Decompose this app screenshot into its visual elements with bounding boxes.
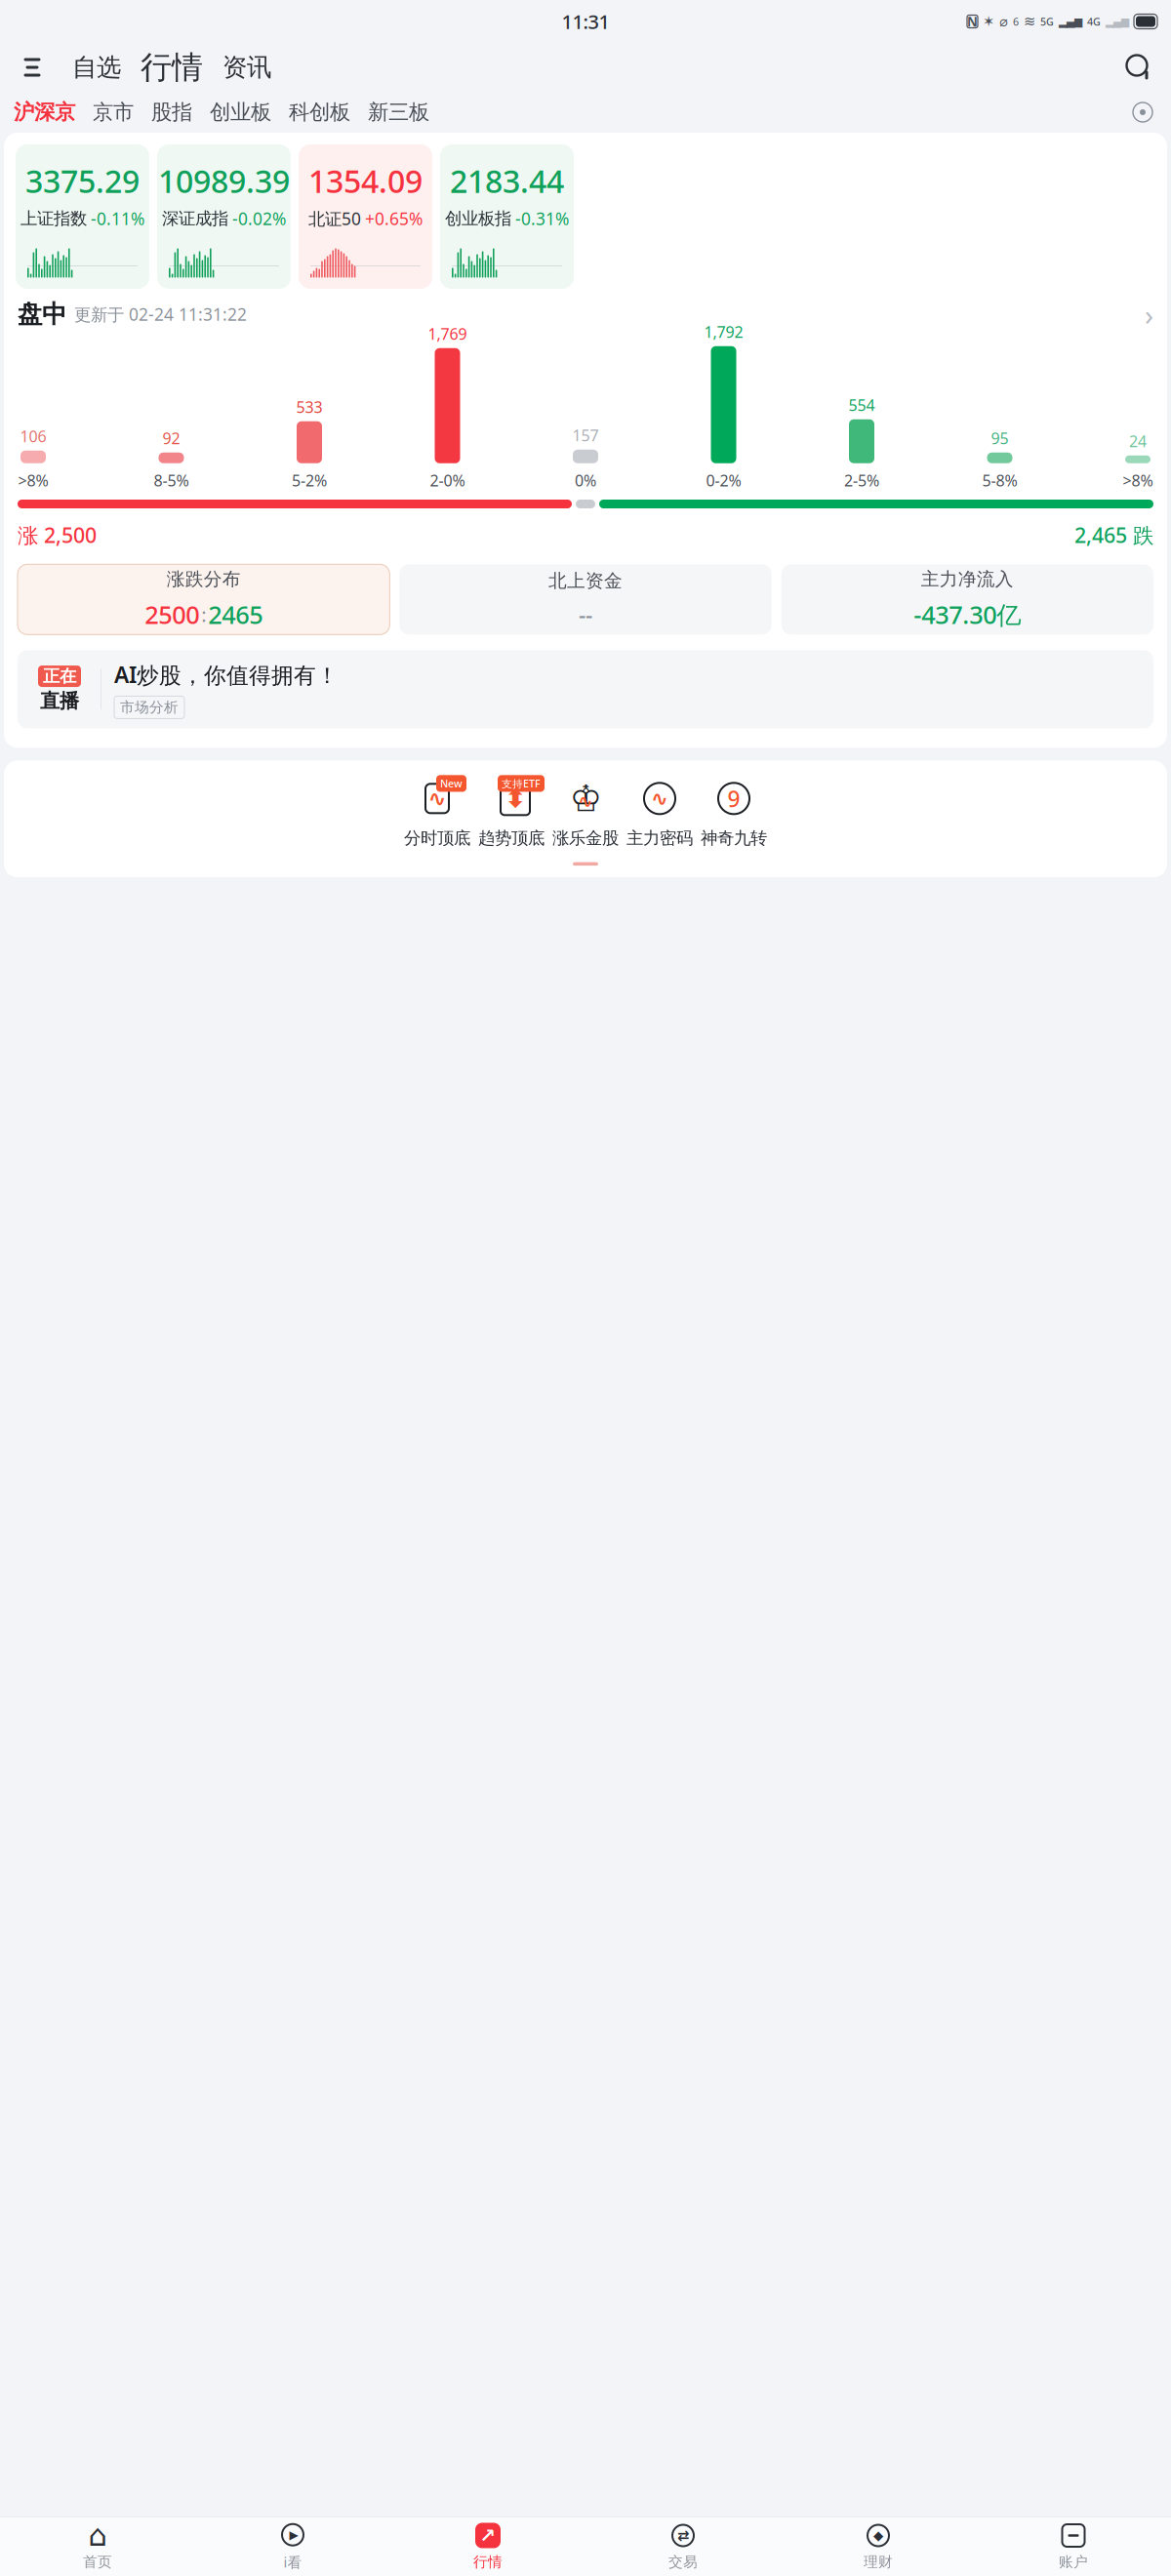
button[interactable]: 北上资金 xyxy=(399,564,771,635)
button[interactable]: 正在 xyxy=(18,650,1153,728)
staticText: 京市 xyxy=(93,99,134,125)
staticText: 1,769 xyxy=(428,323,467,344)
staticText: 24 xyxy=(1129,431,1147,451)
button[interactable]: ▶ xyxy=(195,2521,390,2572)
button[interactable]: 主力净流入 xyxy=(781,564,1153,635)
staticText: i看 xyxy=(283,2552,302,2571)
staticText: 2-5% xyxy=(844,470,879,491)
staticText: ⌂ xyxy=(88,2519,107,2552)
staticText: 10989.39 xyxy=(158,160,290,201)
button[interactable]: ⬍ xyxy=(474,778,548,849)
button[interactable]: 新三板 xyxy=(368,99,429,125)
staticText: 首页 xyxy=(83,2553,112,2571)
button[interactable]: 科创板 xyxy=(289,99,350,125)
staticText: 支持ETF xyxy=(502,777,541,790)
staticText: 正在 xyxy=(43,666,76,687)
staticText: -0.02% xyxy=(232,207,286,230)
button[interactable]: ⇄ xyxy=(585,2521,781,2572)
button[interactable]: ∿ xyxy=(623,778,697,849)
staticText: 市场分析 xyxy=(120,699,179,716)
button[interactable]: 京市 xyxy=(93,99,134,125)
staticText: ↗ xyxy=(480,2524,496,2547)
staticText: 上证指数 xyxy=(20,208,87,229)
button[interactable]: 菜单 xyxy=(16,51,49,84)
staticText: 涨跌分布 xyxy=(167,568,241,590)
button[interactable]: 股指 xyxy=(151,99,192,125)
staticText: 创业板指 xyxy=(445,208,511,229)
button[interactable]: 1354.09 xyxy=(299,144,432,289)
staticText: -0.11% xyxy=(91,207,144,230)
staticText: 主力密码 xyxy=(626,828,693,849)
staticText: 行情 xyxy=(473,2553,503,2571)
staticText: 深证成指 xyxy=(162,208,228,229)
button[interactable]: 盘中 xyxy=(4,289,1167,340)
staticText: ⌀ xyxy=(999,13,1008,30)
staticText: 2,465 跌 xyxy=(1074,521,1153,549)
button[interactable]: 2183.44 xyxy=(440,144,574,289)
button[interactable]: ◆ xyxy=(781,2521,976,2572)
staticText: 新三板 xyxy=(368,99,429,125)
button[interactable]: 9 xyxy=(697,778,771,849)
staticText: 0-2% xyxy=(706,470,741,491)
button[interactable]: 自选 xyxy=(68,52,125,82)
staticText: New xyxy=(440,777,463,790)
staticText: 趋势顶底 xyxy=(478,828,545,849)
button[interactable]: 涨跌分布 xyxy=(18,564,390,635)
button[interactable]: 资讯 xyxy=(219,52,275,82)
staticText: 沪深京 xyxy=(14,99,75,125)
staticText: 北上资金 xyxy=(548,570,623,592)
staticText: 533 xyxy=(296,397,323,417)
staticText: 9 xyxy=(727,784,740,813)
staticText: 5G xyxy=(1040,15,1054,28)
staticText: ≋ xyxy=(1024,13,1035,30)
button[interactable]: 行情 xyxy=(137,48,207,86)
staticText: 理财 xyxy=(864,2553,893,2571)
staticText: ♔ xyxy=(569,778,602,819)
staticText: AI炒股，你值得拥有！ xyxy=(114,660,339,689)
staticText: >8% xyxy=(18,470,48,491)
staticText: 涨 2,500 xyxy=(18,521,97,549)
button[interactable]: 更多板块 xyxy=(1128,98,1157,127)
staticText: 157 xyxy=(572,425,599,446)
staticText: -0.31% xyxy=(515,207,569,230)
staticText: 分时顶底 xyxy=(404,828,470,849)
staticText: -- xyxy=(579,600,592,629)
staticText: 2465 xyxy=(208,598,263,631)
staticText: ▂▄▆ xyxy=(1059,16,1082,27)
staticText: › xyxy=(1145,295,1153,333)
staticText: 5-2% xyxy=(292,470,327,491)
button[interactable]: 账户 xyxy=(976,2521,1171,2572)
staticText: 95 xyxy=(991,428,1009,449)
button[interactable]: 沪深京 xyxy=(14,99,75,125)
button[interactable]: 3375.29 xyxy=(16,144,149,289)
staticText: : xyxy=(201,602,206,628)
staticText: 2183.44 xyxy=(450,160,564,201)
button[interactable]: 创业板 xyxy=(210,99,271,125)
staticText: ⬍ xyxy=(505,784,526,813)
staticText: 涨乐金股 xyxy=(552,828,619,849)
staticText: >8% xyxy=(1123,470,1153,491)
staticText: 4G xyxy=(1087,15,1101,28)
button[interactable]: ∿ xyxy=(400,778,474,849)
staticText: 北证50 xyxy=(308,207,361,230)
staticText: 交易 xyxy=(668,2553,698,2571)
staticText: 2500 xyxy=(145,598,199,631)
staticText: ⇄ xyxy=(677,2527,689,2544)
button[interactable]: 搜索 xyxy=(1122,51,1155,84)
staticText: 554 xyxy=(848,395,875,415)
staticText: 5-8% xyxy=(982,470,1017,491)
staticText: 盘中 xyxy=(18,299,66,329)
staticText: ∿ xyxy=(428,786,446,811)
button[interactable]: ↗ xyxy=(390,2521,585,2572)
button[interactable]: ⌂ xyxy=(0,2521,195,2572)
staticText: ✶ xyxy=(983,13,994,30)
button[interactable]: ♔ xyxy=(548,778,623,849)
staticText: 92 xyxy=(162,428,180,449)
staticText: 自选 xyxy=(72,52,121,82)
staticText: 主力净流入 xyxy=(921,568,1014,590)
staticText: 1354.09 xyxy=(308,160,423,201)
staticText: N xyxy=(967,13,978,30)
staticText: 神奇九转 xyxy=(701,828,767,849)
staticText: 账户 xyxy=(1059,2553,1088,2571)
button[interactable]: 10989.39 xyxy=(157,144,291,289)
